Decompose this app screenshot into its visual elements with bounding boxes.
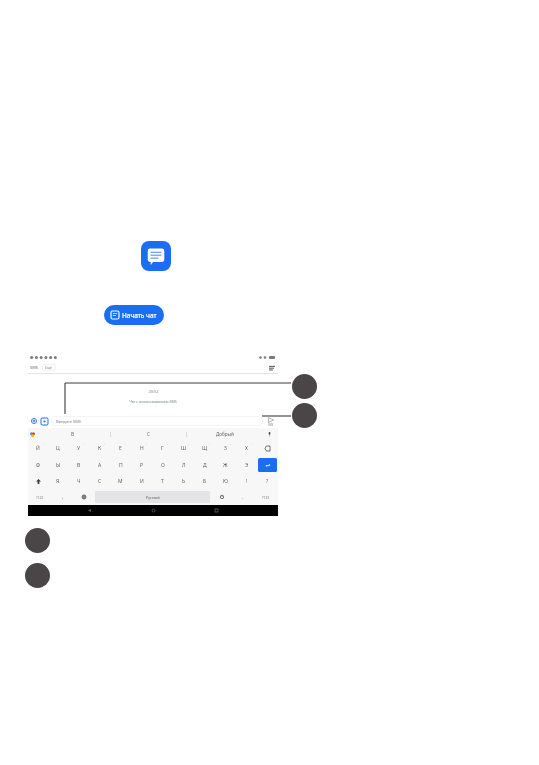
button[interactable]: Shift	[28, 473, 48, 489]
staticText: Добрый	[216, 431, 234, 437]
staticText: Ц	[56, 445, 60, 452]
button[interactable]: Выноска	[25, 563, 50, 588]
staticText: Й	[36, 445, 40, 452]
button[interactable]: Н	[131, 440, 152, 457]
button[interactable]: Прикрепить	[30, 417, 38, 425]
button[interactable]: Щ	[194, 440, 215, 457]
button[interactable]: Х	[236, 440, 257, 457]
staticText: 20:52	[148, 389, 159, 394]
staticText: `	[146, 444, 147, 448]
staticText: С	[147, 431, 150, 437]
button[interactable]: С	[89, 473, 110, 489]
button[interactable]: Е	[110, 440, 131, 457]
button[interactable]: Л	[173, 457, 194, 473]
button[interactable]: В	[35, 428, 110, 440]
button[interactable]: С	[111, 428, 186, 440]
staticText: Р	[140, 462, 144, 469]
button[interactable]: Ы	[48, 457, 68, 473]
staticText: ?	[266, 478, 269, 485]
button[interactable]: К	[89, 440, 110, 457]
button[interactable]: Главный экран	[151, 508, 156, 513]
button[interactable]: Удалить	[257, 440, 278, 457]
staticText: Л	[182, 462, 186, 469]
button[interactable]: ?123	[28, 489, 52, 505]
button[interactable]: Сменить язык	[73, 489, 94, 505]
button[interactable]: М	[110, 473, 131, 489]
button[interactable]: Введите SMS	[51, 416, 263, 426]
staticText: Ф	[36, 462, 41, 469]
button[interactable]: Э	[236, 457, 257, 473]
staticText: SMS	[30, 365, 39, 370]
button[interactable]: Отправить	[265, 416, 276, 427]
button[interactable]: Р	[131, 457, 152, 473]
button[interactable]: Эмодзи	[211, 489, 232, 505]
button[interactable]: ?	[257, 473, 278, 489]
button[interactable]: Выноска	[292, 374, 317, 399]
staticText: `	[43, 444, 44, 448]
staticText: `	[251, 444, 252, 448]
button[interactable]: П	[110, 457, 131, 473]
staticText: Ш	[181, 445, 187, 452]
staticText: В	[77, 462, 81, 469]
button[interactable]: Ю	[215, 473, 236, 489]
button[interactable]: Добрый	[187, 428, 262, 440]
staticText: Ещё	[45, 365, 53, 370]
button[interactable]: ,	[52, 489, 73, 505]
button[interactable]: Ч	[68, 473, 89, 489]
button[interactable]: Т	[152, 473, 173, 489]
button[interactable]: Галерея	[40, 417, 49, 426]
button[interactable]: Обзор	[214, 508, 219, 513]
staticText: И	[140, 478, 144, 485]
staticText: Ь	[182, 478, 186, 485]
button[interactable]: ?123	[253, 489, 278, 505]
button[interactable]: !	[236, 473, 257, 489]
button[interactable]: Ц	[48, 440, 68, 457]
staticText: Д	[203, 462, 207, 469]
staticText: Ы	[56, 462, 61, 469]
button[interactable]: Ввод	[258, 458, 277, 472]
staticText: `	[104, 444, 105, 448]
button[interactable]: Й	[28, 440, 48, 457]
staticText: ?123	[262, 495, 270, 500]
staticText: Ч	[77, 478, 81, 485]
button[interactable]: Голосовой ввод	[262, 428, 276, 440]
button[interactable]: Ж	[215, 457, 236, 473]
staticText: Е	[119, 445, 122, 452]
staticText: `	[83, 444, 84, 448]
button[interactable]: Ещё	[42, 364, 56, 371]
staticText: Ж	[223, 462, 228, 469]
staticText: О	[161, 462, 165, 469]
staticText: А	[98, 462, 102, 469]
button[interactable]: Выноска	[25, 528, 50, 553]
button[interactable]: Сообщения	[141, 241, 171, 271]
staticText: Русский	[146, 495, 160, 500]
button[interactable]: У	[68, 440, 89, 457]
button[interactable]: Я	[48, 473, 68, 489]
staticText: Т	[161, 478, 164, 485]
button[interactable]: Выноска	[292, 403, 317, 428]
button[interactable]: Ь	[173, 473, 194, 489]
staticText: Х	[245, 445, 248, 452]
staticText: `	[63, 444, 64, 448]
button[interactable]: Ф	[28, 457, 48, 473]
button[interactable]: Русский	[95, 491, 210, 503]
staticText: .	[242, 494, 244, 500]
button[interactable]: Д	[194, 457, 215, 473]
button[interactable]: Назад	[87, 508, 92, 513]
button[interactable]: З	[215, 440, 236, 457]
button[interactable]: В	[68, 457, 89, 473]
button[interactable]: Ш	[173, 440, 194, 457]
button[interactable]: Б	[194, 473, 215, 489]
staticText: ?123	[36, 495, 44, 500]
button[interactable]: И	[131, 473, 152, 489]
button[interactable]: О	[152, 457, 173, 473]
staticText: Я	[56, 478, 60, 485]
staticText: SMS	[268, 423, 274, 427]
button[interactable]: Начать чат	[104, 305, 164, 325]
button[interactable]: Г	[152, 440, 173, 457]
staticText: Щ	[202, 445, 208, 452]
button[interactable]: А	[89, 457, 110, 473]
button[interactable]: Меню	[267, 363, 276, 372]
staticText: У	[77, 445, 81, 452]
